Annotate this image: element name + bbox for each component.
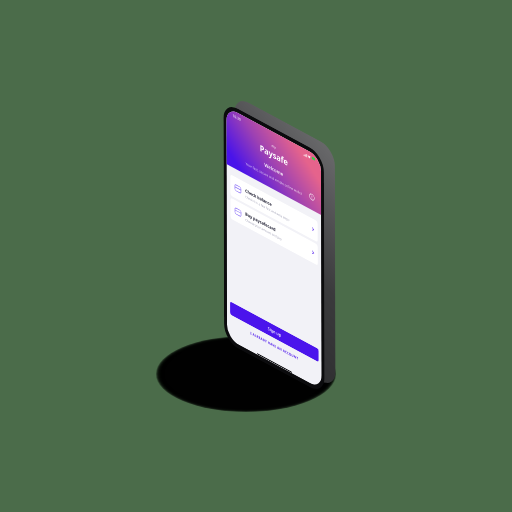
staticText: Your fast, secure and simple online wall… bbox=[226, 151, 321, 206]
staticText: Check balance bbox=[245, 187, 272, 208]
staticText: Sign up bbox=[268, 325, 281, 338]
staticText: Welcome bbox=[226, 140, 321, 198]
staticText: my bbox=[272, 143, 276, 150]
button[interactable]: Sign up bbox=[230, 301, 319, 362]
staticText: Check it in a few fast and easy steps bbox=[245, 194, 289, 222]
staticText: Choose your amount and pay bbox=[245, 217, 282, 241]
button[interactable]: I ALREADY HAVE AN ACCOUNT bbox=[227, 316, 322, 374]
button[interactable]: Help bbox=[308, 191, 316, 203]
button[interactable]: Buy paysafecard bbox=[230, 197, 318, 266]
button[interactable]: Check balance bbox=[230, 174, 318, 243]
staticText: Paysafe bbox=[260, 141, 288, 168]
staticText: Buy paysafecard bbox=[245, 211, 275, 233]
staticText: 10:30 bbox=[233, 113, 241, 122]
staticText: I ALREADY HAVE AN ACCOUNT bbox=[250, 330, 298, 361]
